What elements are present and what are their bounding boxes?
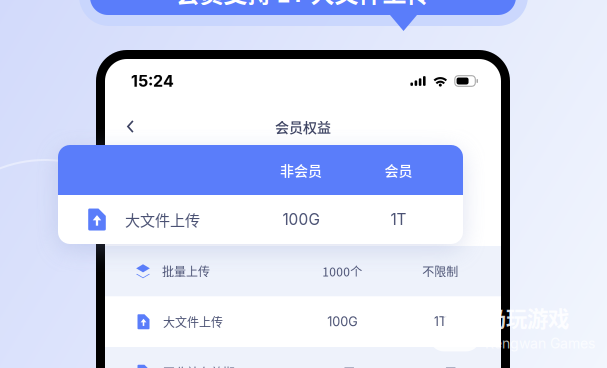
staticText: 回收站有效期 [163, 364, 235, 368]
button[interactable]: 回收站有效期 [105, 347, 501, 368]
staticText: 大文件上传 [125, 209, 200, 230]
staticText: 会员权益 [275, 116, 331, 137]
staticText: 30天 [329, 364, 355, 368]
staticText: 100G [327, 314, 357, 329]
staticText: 100G [282, 210, 319, 229]
staticText: 15:24 [131, 71, 174, 91]
button[interactable]: 大文件上传 [105, 296, 501, 347]
button[interactable]: Back [105, 110, 163, 143]
staticText: 不限制 [422, 263, 458, 280]
staticText: 会员 [384, 160, 412, 180]
staticText: 1T [390, 210, 406, 229]
staticText: 批量上传 [162, 263, 210, 280]
staticText: 大文件上传 [163, 313, 223, 330]
staticText: 180天 [424, 364, 457, 368]
staticText: 1000个 [322, 263, 362, 280]
staticText: 会员支持 1T 大文件上传 [175, 0, 430, 9]
button[interactable]: 批量上传 [105, 246, 501, 296]
staticText: Rengwan Games [485, 335, 595, 352]
staticText: 1T [434, 314, 447, 329]
staticText: 仍玩游戏 [485, 302, 569, 333]
staticText: 非会员 [280, 160, 322, 180]
